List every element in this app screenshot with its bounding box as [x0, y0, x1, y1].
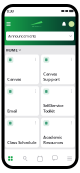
staticText: Academic Resources — [43, 135, 63, 145]
staticText: 8:30 — [6, 8, 13, 14]
button[interactable]: Announcements — [6, 31, 74, 40]
staticText: Canvas Support — [43, 71, 60, 82]
button[interactable]: Academic Resources — [41, 118, 75, 147]
button[interactable]: Calendar — [33, 149, 47, 167]
button[interactable]: Email — [5, 86, 39, 116]
button[interactable]: HOME — [3, 45, 77, 54]
button[interactable]: Self-Service Toolkit — [41, 86, 75, 116]
staticText: UNIVERSITY — [31, 25, 41, 27]
staticText: Self-Service Toolkit — [43, 103, 63, 113]
button[interactable]: More — [62, 149, 77, 167]
button[interactable]: Search — [18, 149, 33, 167]
button[interactable]: Profile — [67, 18, 75, 30]
button[interactable]: Canvas Support — [41, 54, 75, 84]
button[interactable]: Menu — [4, 18, 12, 30]
staticText: Email — [7, 108, 17, 113]
button[interactable]: Canvas — [5, 54, 39, 84]
staticText: Canvas — [7, 77, 21, 82]
button[interactable]: Messages — [47, 149, 62, 167]
button[interactable]: Home — [3, 149, 18, 167]
staticText: Announcements — [8, 33, 36, 39]
staticText: Class Schedule — [7, 140, 36, 145]
button[interactable]: Class Schedule — [5, 118, 39, 147]
staticText: HOME — [6, 47, 18, 53]
button[interactable]: Notifications — [60, 18, 67, 30]
